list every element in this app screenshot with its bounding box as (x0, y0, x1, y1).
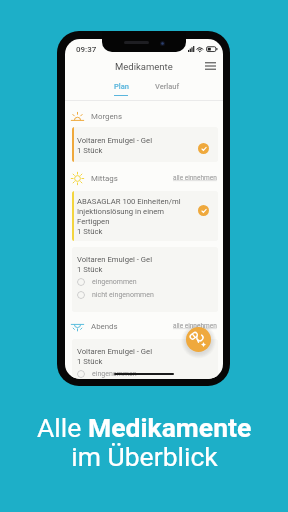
staticText: ABASAGLAR 100 Einheiten/ml Injektionslös… (77, 196, 181, 236)
button[interactable]: Morgens (71, 105, 217, 127)
button[interactable]: Menü (202, 58, 218, 74)
staticText: nicht eingenommen (92, 291, 154, 299)
staticText: Plan (114, 82, 129, 91)
button[interactable]: Medikament hinzufügen (186, 327, 211, 352)
staticText: eingenommen (92, 278, 137, 286)
button[interactable]: Abends (71, 315, 217, 337)
button[interactable]: Mittags (71, 167, 217, 189)
staticText: Morgens (91, 112, 123, 121)
button[interactable]: eingenommen (77, 278, 137, 286)
staticText: Voltaren Emulgel - Gel 1 Stück (77, 346, 153, 366)
button[interactable]: alle einnehmen (173, 174, 217, 182)
staticText: alle einnehmen (173, 322, 217, 330)
button[interactable]: nicht eingenommen (77, 291, 154, 299)
staticText: eingenommen (92, 370, 137, 378)
staticText: Verlauf (155, 82, 180, 91)
button[interactable]: Voltaren Emulgel - Gel 1 Stück (72, 247, 218, 312)
staticText: Voltaren Emulgel - Gel 1 Stück (77, 135, 153, 155)
staticText: Abends (91, 322, 118, 331)
staticText: Mittags (91, 174, 118, 183)
staticText: Medikamente (115, 61, 173, 72)
button[interactable]: Verlauf (153, 77, 181, 101)
staticText: alle einnehmen (173, 174, 217, 182)
staticText: im Überblick (71, 441, 218, 472)
button[interactable]: Plan (107, 77, 135, 101)
button[interactable]: ABASAGLAR 100 Einheiten/ml Injektionslös… (72, 191, 218, 241)
button[interactable]: eingenommen (77, 370, 137, 378)
staticText: Alle (37, 412, 88, 443)
button[interactable]: Voltaren Emulgel - Gel 1 Stück (72, 339, 218, 379)
button[interactable]: Voltaren Emulgel - Gel 1 Stück (72, 127, 218, 162)
staticText: Medikamente (88, 412, 252, 443)
staticText: Voltaren Emulgel - Gel 1 Stück (77, 254, 153, 274)
staticText: 09:37 (76, 45, 97, 54)
button[interactable]: alle einnehmen (173, 322, 217, 330)
